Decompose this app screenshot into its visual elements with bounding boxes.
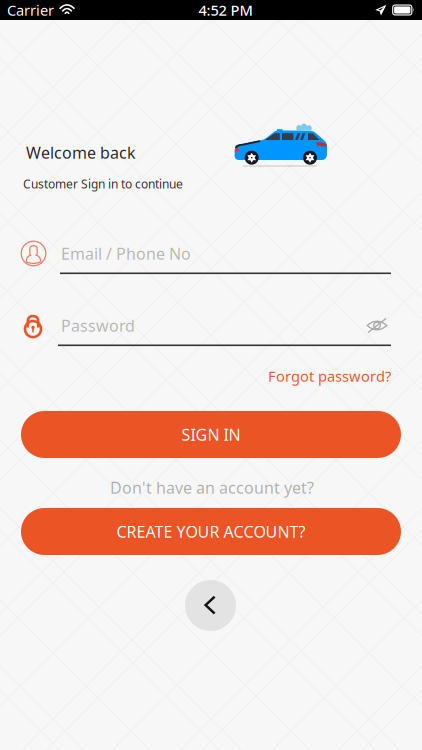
- staticText: CREATE YOUR ACCOUNT?: [116, 521, 305, 542]
- button[interactable]: CREATE YOUR ACCOUNT?: [21, 508, 401, 555]
- staticText: Customer Sign in to continue: [23, 176, 183, 192]
- staticText: Forgot password?: [268, 366, 391, 386]
- staticText: Don't have an account yet?: [110, 477, 314, 498]
- staticText: Email / Phone No: [61, 243, 191, 264]
- button[interactable]: Forgot password?: [0, 366, 391, 386]
- staticText: SIGN IN: [181, 424, 240, 445]
- staticText: Welcome back: [26, 142, 136, 163]
- staticText: Password: [61, 315, 135, 336]
- staticText: Carrier: [7, 0, 54, 20]
- button[interactable]: Back: [185, 580, 236, 631]
- button[interactable]: SIGN IN: [21, 411, 401, 458]
- staticText: 4:52 PM: [198, 0, 252, 20]
- button[interactable]: Show password: [360, 310, 394, 341]
